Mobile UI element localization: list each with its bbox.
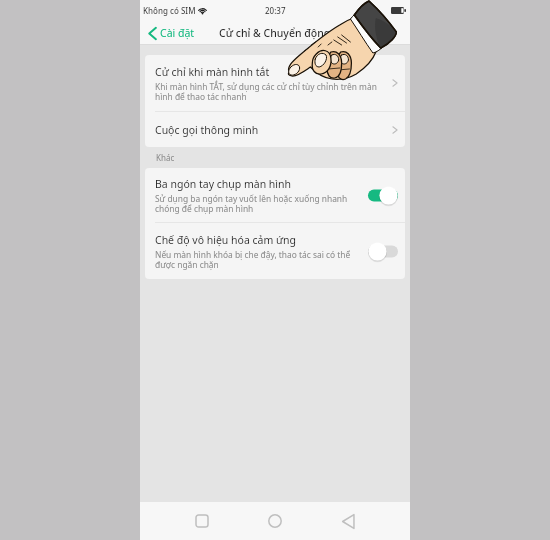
button[interactable]: Chế độ vô hiệu hóa cảm ứng xyxy=(145,223,405,279)
staticText: Ba ngón tay chụp màn hình xyxy=(155,177,292,191)
staticText: Khác xyxy=(156,152,175,163)
staticText: Chế độ vô hiệu hóa cảm ứng xyxy=(155,233,297,247)
staticText: 20:37 xyxy=(265,5,286,16)
staticText: Nếu màn hình khóa bị che đậy, thao tác s… xyxy=(155,249,351,270)
staticText: Cử chỉ & Chuyển động xyxy=(219,26,331,40)
button[interactable]: Recent apps xyxy=(182,502,222,540)
button[interactable]: Ba ngón tay chụp màn hình xyxy=(145,168,405,222)
button[interactable]: Cuộc gọi thông minh xyxy=(145,112,405,147)
button[interactable]: Switch off xyxy=(368,242,398,261)
staticText: Sử dụng ba ngón tay vuốt lên hoặc xuống … xyxy=(155,193,348,214)
staticText: Cử chỉ khi màn hình tắt xyxy=(155,65,270,79)
staticText: Khi màn hình TẮT, sử dụng các cử chỉ tùy… xyxy=(155,81,377,102)
button[interactable]: Home xyxy=(255,502,295,540)
button[interactable]: Back xyxy=(328,502,368,540)
button[interactable]: Cử chỉ khi màn hình tắt xyxy=(145,55,405,111)
button[interactable]: Cài đặt xyxy=(148,26,195,40)
staticText: Không có SIM xyxy=(143,5,196,16)
button[interactable]: Switch on xyxy=(368,186,398,205)
staticText: Cài đặt xyxy=(160,26,195,40)
staticText: Cuộc gọi thông minh xyxy=(155,123,259,137)
